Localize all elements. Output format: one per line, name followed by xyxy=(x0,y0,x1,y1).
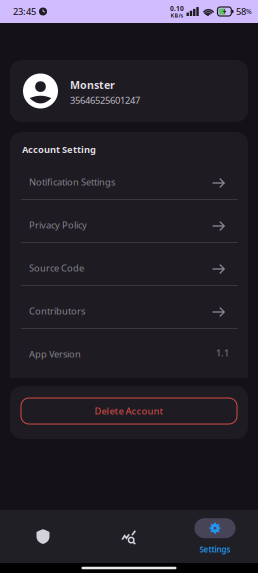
button[interactable]: Security xyxy=(0,510,86,563)
staticText: Privacy Policy xyxy=(29,219,87,231)
button[interactable]: App Version xyxy=(10,329,248,371)
staticText: 58 xyxy=(236,5,246,18)
staticText: 1.1 xyxy=(216,347,229,359)
staticText: KB/s xyxy=(170,12,183,19)
button[interactable]: Source Code xyxy=(10,243,248,285)
button[interactable]: Notification Settings xyxy=(10,157,248,199)
button[interactable]: Delete Account xyxy=(21,398,237,424)
staticText: 35646525601247 xyxy=(70,94,140,106)
staticText: 0.10 xyxy=(170,4,184,13)
staticText: Notification Settings xyxy=(29,176,115,188)
staticText: Monster xyxy=(70,78,115,92)
staticText: App Version xyxy=(29,348,81,360)
staticText: Source Code xyxy=(29,262,84,274)
staticText: % xyxy=(246,7,252,16)
button[interactable]: Contributors xyxy=(10,286,248,328)
staticText: Contributors xyxy=(29,305,85,317)
staticText: Account Setting xyxy=(22,143,96,156)
button[interactable]: Privacy Policy xyxy=(10,200,248,242)
staticText: Settings xyxy=(199,544,230,555)
staticText: Delete Account xyxy=(94,405,163,417)
button[interactable]: Analyze xyxy=(86,510,172,563)
staticText: 23:45 xyxy=(13,5,36,18)
button[interactable]: Settings xyxy=(172,510,258,563)
